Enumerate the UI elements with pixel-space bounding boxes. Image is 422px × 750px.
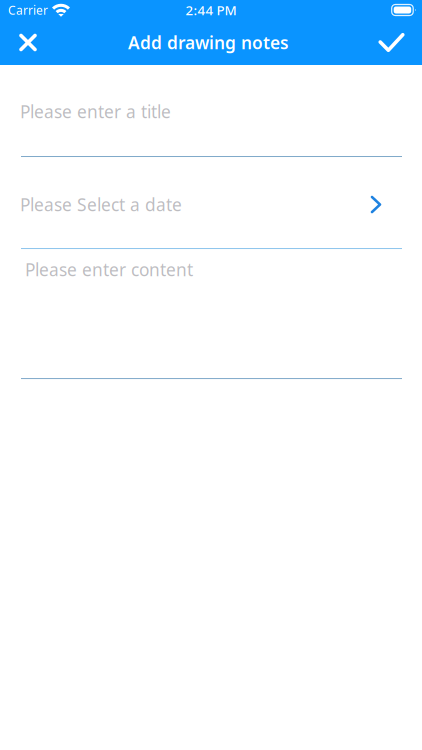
button[interactable]: Please enter a title	[0, 65, 422, 157]
staticText: Please enter a title	[20, 100, 171, 123]
button[interactable]: Please enter content	[0, 249, 422, 379]
staticText: Please enter content	[25, 258, 193, 281]
button[interactable]: Please Select a date	[0, 157, 422, 249]
staticText: Please Select a date	[20, 193, 182, 216]
button[interactable]: Close	[0, 20, 56, 65]
staticText: Add drawing notes	[128, 31, 289, 54]
staticText: 2:44 PM	[185, 1, 236, 19]
staticText: Carrier	[8, 2, 48, 18]
button[interactable]: Save	[361, 20, 422, 65]
